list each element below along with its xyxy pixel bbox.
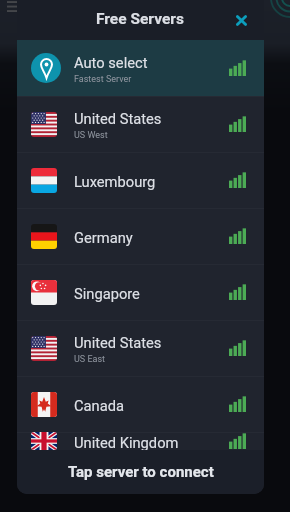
- staticText: Free Servers: [96, 10, 184, 28]
- staticText: Tap server to connect: [68, 463, 214, 481]
- button[interactable]: Luxembourg: [17, 152, 264, 208]
- button[interactable]: Singapore: [17, 264, 264, 320]
- button[interactable]: Auto select: [17, 40, 264, 96]
- button[interactable]: United Kingdom: [17, 432, 264, 450]
- staticText: Luxembourg: [74, 173, 156, 190]
- staticText: Canada: [74, 397, 124, 414]
- staticText: United States: [74, 110, 162, 127]
- staticText: Singapore: [74, 285, 140, 302]
- staticText: United Kingdom: [74, 434, 179, 451]
- staticText: Germany: [74, 229, 133, 246]
- staticText: US West: [74, 130, 108, 141]
- staticText: Auto select: [74, 54, 148, 71]
- button[interactable]: United States: [17, 320, 264, 376]
- button[interactable]: Close: [226, 5, 256, 35]
- staticText: United States: [74, 334, 162, 351]
- button[interactable]: United States: [17, 96, 264, 152]
- button[interactable]: Germany: [17, 208, 264, 264]
- button[interactable]: Tap server to connect: [17, 450, 264, 494]
- staticText: US East: [74, 354, 106, 365]
- button[interactable]: Canada: [17, 376, 264, 432]
- staticText: Fastest Server: [74, 74, 132, 85]
